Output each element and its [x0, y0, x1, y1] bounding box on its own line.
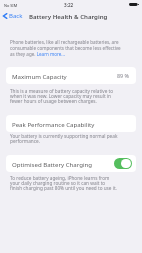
- staticText: Your battery is currently supporting nor…: [10, 133, 118, 144]
- staticText: 3:22: [64, 2, 74, 8]
- staticText: Peak Performance Capability: [12, 120, 95, 128]
- staticText: Battery Health & Charging: [29, 12, 108, 20]
- staticText: Maximum Capacity: [12, 72, 67, 80]
- button[interactable]: Back: [0, 10, 26, 22]
- staticText: To reduce battery ageing, iPhone learns …: [10, 175, 118, 191]
- staticText: Back: [9, 12, 23, 20]
- staticText: Phone batteries, like all rechargeable b…: [10, 39, 124, 57]
- staticText: Optimised Battery Charging: [12, 160, 92, 168]
- button[interactable]: Optimised Battery Charging toggle: [114, 158, 132, 169]
- staticText: This is a measure of battery capacity re…: [10, 88, 118, 104]
- staticText: No SIM: [4, 3, 18, 8]
- staticText: 89 %: [117, 72, 130, 79]
